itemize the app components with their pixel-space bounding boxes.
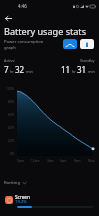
staticText: 60% (8, 113, 15, 117)
staticText: 12am (31, 159, 40, 163)
staticText: 20% (8, 139, 15, 143)
staticText: Active (4, 58, 15, 63)
staticText: 11 (61, 64, 71, 75)
button[interactable]: Back (2, 12, 14, 24)
staticText: hr (9, 69, 15, 74)
button[interactable]: Screen (0, 191, 99, 216)
staticText: 4:46 (18, 3, 27, 9)
staticText: 80% (8, 100, 15, 104)
staticText: 19.2% (15, 199, 27, 205)
staticText: 31 (77, 64, 87, 75)
button[interactable]: Ranking (4, 180, 26, 186)
staticText: Battery usage stats (4, 25, 87, 37)
staticText: 32 (15, 64, 25, 75)
staticText: 3am (47, 159, 54, 163)
staticText: Now (88, 159, 95, 163)
staticText: Ranking (4, 180, 21, 186)
staticText: 0% (10, 152, 15, 156)
staticText: 7 (4, 64, 9, 75)
staticText: min (87, 69, 95, 74)
staticText: Power consumption graph (4, 39, 44, 50)
staticText: Screen (15, 194, 30, 200)
staticText: 9pm (17, 159, 24, 163)
staticText: 100% (6, 87, 15, 91)
button[interactable]: Battery usage list (80, 39, 94, 49)
staticText: 6am (60, 159, 67, 163)
staticText: 40% (8, 126, 15, 130)
button[interactable]: Graph view (63, 39, 77, 49)
staticText: 9am (74, 159, 81, 163)
staticText: min (25, 69, 33, 74)
staticText: Standby (80, 58, 95, 63)
staticText: hr (71, 69, 77, 74)
